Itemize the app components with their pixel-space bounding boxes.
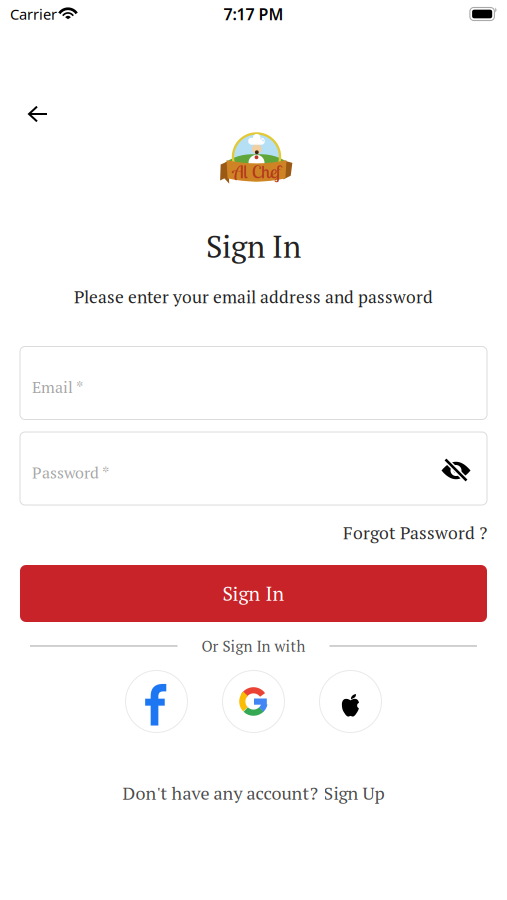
button[interactable]: Sign in with Facebook [125,670,187,732]
button[interactable]: Show password [441,458,471,479]
button[interactable]: Sign In [20,565,487,622]
staticText: Password * [32,462,109,483]
staticText: Please enter your email address and pass… [74,285,433,308]
staticText: Forgot Password ? [343,521,487,544]
staticText: 7:17 PM [223,3,283,25]
textField[interactable]: Password * [32,462,441,483]
staticText: Email * [32,376,83,398]
staticText: Email * [32,376,83,398]
staticText: Or Sign In with [201,636,305,656]
textField[interactable]: Email * [32,376,471,398]
staticText: Don't have any account? [122,781,318,805]
staticText: Sign In [206,226,301,267]
staticText: Carrier [10,4,57,24]
button[interactable]: Sign in with Google [222,670,284,732]
staticText: Sign In [222,581,284,606]
button[interactable]: Back [28,106,47,122]
staticText: Al Chef [234,159,279,181]
staticText: Password * [32,462,109,483]
button[interactable]: Sign in with Apple [319,670,381,732]
staticText: Sign Up [323,781,384,805]
button[interactable]: Forgot Password ? [343,521,487,544]
button[interactable]: Sign Up [323,781,384,805]
